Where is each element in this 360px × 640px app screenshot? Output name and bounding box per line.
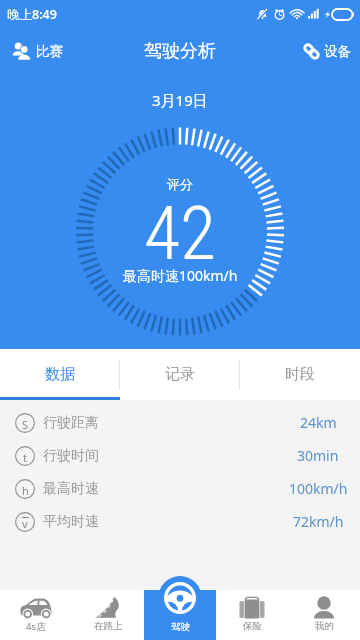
staticText: v — [22, 516, 28, 531]
staticText: 最高时速100km/h — [123, 266, 238, 285]
staticText: t — [23, 450, 27, 465]
button[interactable]: 记录 — [120, 349, 240, 400]
button[interactable]: 4s店 — [0, 590, 72, 640]
staticText: 30min — [297, 446, 339, 465]
button[interactable]: 保险 — [216, 590, 288, 640]
staticText: 保险 — [243, 620, 262, 632]
staticText: 最高时速 — [43, 480, 99, 498]
button[interactable]: 时段 — [240, 349, 360, 400]
staticText: 72km/h — [293, 512, 344, 531]
staticText: 行驶距离 — [43, 414, 99, 432]
staticText: 驾驶分析 — [144, 40, 216, 63]
staticText: 在路上 — [94, 620, 123, 632]
staticText: h — [22, 483, 29, 498]
button[interactable]: h — [0, 472, 360, 505]
button[interactable]: 数据 — [0, 349, 120, 400]
button[interactable]: 驾驶 — [144, 572, 216, 640]
staticText: 驾驶 — [171, 621, 190, 633]
staticText: S — [22, 417, 29, 432]
staticText: 24km — [300, 413, 337, 432]
staticText: 晚上8:49 — [7, 6, 57, 23]
staticText: 42 — [144, 190, 216, 277]
staticText: 比赛 — [36, 43, 63, 60]
staticText: 设备 — [324, 43, 351, 60]
staticText: 行驶时间 — [43, 447, 99, 465]
button[interactable]: t — [0, 439, 360, 472]
staticText: 4s店 — [26, 620, 46, 633]
button[interactable]: 设备 — [290, 36, 360, 67]
button[interactable]: 比赛 — [0, 35, 75, 67]
staticText: 时段 — [285, 365, 315, 384]
button[interactable]: 在路上 — [72, 590, 144, 640]
button[interactable]: S — [0, 406, 360, 439]
staticText: 100km/h — [289, 479, 348, 498]
staticText: 我的 — [315, 620, 334, 632]
staticText: 数据 — [45, 365, 75, 384]
button[interactable]: v — [0, 505, 360, 538]
staticText: 评分 — [167, 176, 193, 192]
staticText: 平均时速 — [43, 513, 99, 531]
button[interactable]: 我的 — [288, 590, 360, 640]
staticText: 记录 — [165, 365, 195, 384]
staticText: 3月19日 — [152, 90, 208, 110]
